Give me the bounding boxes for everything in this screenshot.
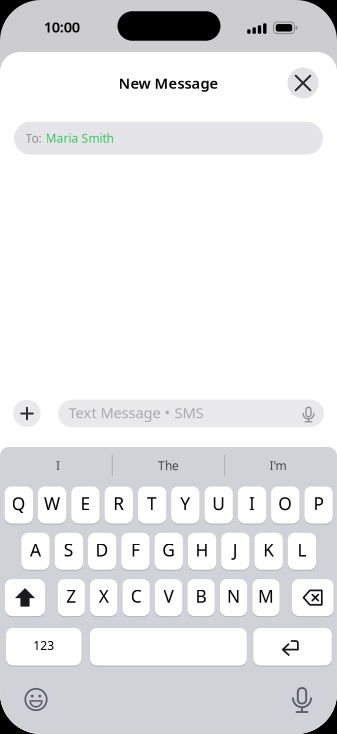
button[interactable]: Dictate <box>285 683 319 717</box>
button[interactable]: Y <box>171 486 200 524</box>
button[interactable]: S <box>55 532 83 570</box>
staticText: To: <box>25 130 41 146</box>
button[interactable]: Return <box>253 627 332 666</box>
button[interactable]: G <box>154 532 183 570</box>
button[interactable]: Shift <box>5 579 45 617</box>
staticText: B <box>196 585 207 608</box>
button[interactable]: The <box>116 450 220 480</box>
button[interactable]: P <box>304 486 333 524</box>
button[interactable]: X <box>90 579 117 617</box>
button[interactable]: U <box>204 486 233 524</box>
button[interactable]: L <box>288 532 316 570</box>
staticText: Y <box>180 492 190 515</box>
button[interactable]: 123 <box>6 627 81 666</box>
staticText: M <box>258 585 274 608</box>
staticText: W <box>44 492 60 515</box>
staticText: E <box>80 492 90 515</box>
staticText: I <box>249 492 255 515</box>
staticText: G <box>162 538 175 561</box>
staticText: R <box>113 492 124 515</box>
staticText: O <box>278 492 292 515</box>
button[interactable]: T <box>138 486 166 524</box>
button[interactable]: I'm <box>226 450 330 480</box>
staticText: J <box>233 538 238 561</box>
staticText: T <box>147 492 157 515</box>
staticText: U <box>212 492 225 515</box>
staticText: L <box>297 538 306 561</box>
button[interactable]: M <box>252 579 280 617</box>
button[interactable]: To: <box>14 122 323 155</box>
button[interactable]: D <box>88 532 116 570</box>
button[interactable]: Z <box>58 579 85 617</box>
staticText: D <box>96 538 109 561</box>
staticText: I <box>56 457 60 473</box>
staticText: X <box>99 585 109 608</box>
button[interactable]: R <box>104 486 133 524</box>
button[interactable]: K <box>254 532 283 570</box>
button[interactable]: Space <box>90 627 247 666</box>
staticText: C <box>131 585 142 608</box>
staticText: The <box>158 457 179 473</box>
button[interactable]: Close <box>287 67 318 98</box>
staticText: 10:00 <box>44 17 80 37</box>
button[interactable]: B <box>187 579 215 617</box>
button[interactable]: Delete <box>292 579 333 617</box>
button[interactable]: Add attachment <box>13 400 41 427</box>
button[interactable]: I <box>6 450 110 480</box>
staticText: A <box>30 538 41 561</box>
staticText: H <box>196 538 209 561</box>
staticText: N <box>227 585 240 608</box>
button[interactable]: F <box>121 532 150 570</box>
staticText: S <box>64 538 74 561</box>
button[interactable]: C <box>122 579 150 617</box>
staticText: New Message <box>118 73 218 93</box>
staticText: F <box>131 538 140 561</box>
button[interactable]: Emoji <box>21 684 51 714</box>
button[interactable]: O <box>271 486 299 524</box>
button[interactable]: H <box>188 532 216 570</box>
button[interactable]: N <box>220 579 247 617</box>
button[interactable]: W <box>38 486 66 524</box>
staticText: Q <box>12 492 26 515</box>
staticText: Text Message • SMS <box>68 403 203 422</box>
button[interactable]: V <box>155 579 182 617</box>
button[interactable]: Q <box>5 486 33 524</box>
button[interactable]: A <box>21 532 50 570</box>
button[interactable]: I <box>238 486 266 524</box>
staticText: K <box>263 538 274 561</box>
staticText: 123 <box>33 637 54 653</box>
staticText: V <box>164 585 174 608</box>
button[interactable]: J <box>221 532 250 570</box>
staticText: Z <box>66 585 76 608</box>
staticText: Maria Smith <box>45 130 113 146</box>
button[interactable]: Text Message • SMS <box>58 400 324 427</box>
button[interactable]: E <box>71 486 100 524</box>
staticText: I'm <box>269 457 286 473</box>
staticText: P <box>314 492 324 515</box>
